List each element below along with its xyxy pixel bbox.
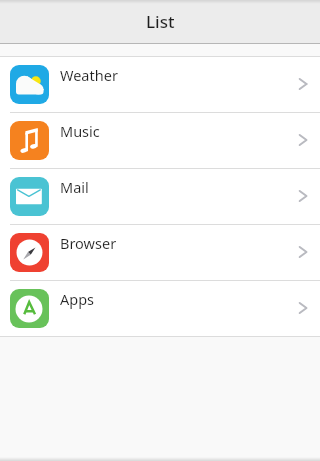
staticText: Music xyxy=(60,121,100,141)
button[interactable]: Mail xyxy=(0,168,320,224)
staticText: Browser xyxy=(60,233,117,253)
button[interactable]: Weather xyxy=(0,56,320,112)
staticText: Weather xyxy=(60,65,118,85)
button[interactable]: Browser xyxy=(0,224,320,280)
staticText: Mail xyxy=(60,177,89,197)
button[interactable]: Music xyxy=(0,112,320,168)
staticText: Apps xyxy=(60,289,95,309)
staticText: List xyxy=(146,10,175,33)
button[interactable]: Apps xyxy=(0,280,320,336)
